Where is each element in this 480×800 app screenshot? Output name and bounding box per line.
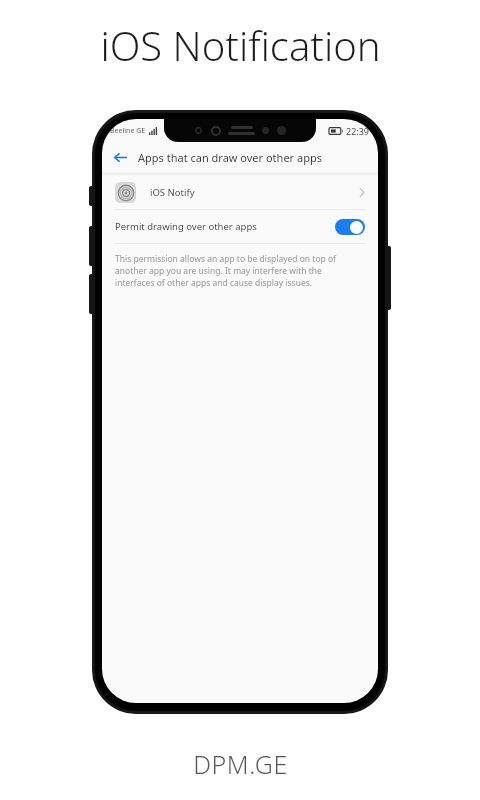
button[interactable]: Permit drawing over other apps (102, 210, 378, 243)
staticText: Beeline GE (110, 126, 146, 136)
button[interactable]: iOS Notify (102, 175, 378, 209)
button[interactable]: Permit drawing over other apps (335, 219, 365, 235)
staticText: DPM.GE (193, 747, 288, 781)
staticText: Apps that can draw over other apps (138, 150, 322, 165)
staticText: Permit drawing over other apps (115, 220, 257, 233)
staticText: iOS Notification (100, 18, 381, 72)
staticText: iOS Notify (150, 186, 195, 199)
button[interactable]: Back (106, 143, 134, 171)
staticText: 22:39 (346, 125, 370, 137)
staticText: This permission allows an app to be disp… (115, 253, 357, 289)
